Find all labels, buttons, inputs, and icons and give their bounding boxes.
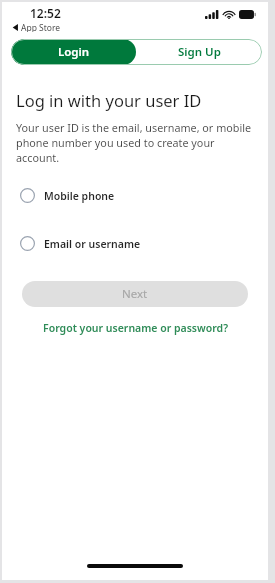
staticText: 12:52 [30,5,61,21]
staticText: Forgot your username or password? [43,321,228,335]
staticText: Your user ID is the email, username, or … [16,120,256,165]
staticText: Email or username [44,237,141,251]
button[interactable]: Login [11,39,136,65]
button[interactable]: Forgot your username or password? [2,321,268,335]
staticText: Sign Up [178,44,221,60]
staticText: Log in with your user ID [16,89,202,111]
button[interactable]: Mobile phone [2,186,268,205]
staticText: App Store [21,22,61,32]
button[interactable]: Email or username [2,234,268,253]
staticText: Login [58,44,90,60]
button[interactable]: Sign Up [136,39,262,65]
staticText: Mobile phone [44,189,115,203]
staticText: Next [122,286,148,302]
button[interactable]: Next [22,281,248,307]
